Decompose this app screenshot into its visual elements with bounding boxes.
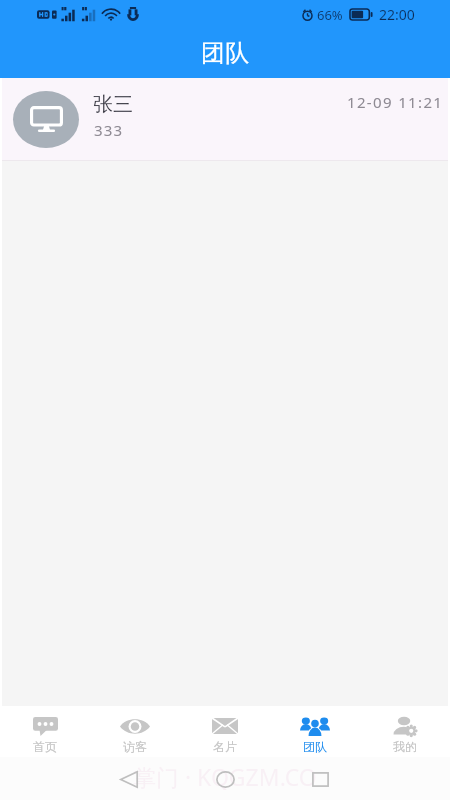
button[interactable]: Home xyxy=(203,764,247,794)
staticText: 张三 xyxy=(93,92,133,117)
staticText: 我的 xyxy=(393,739,417,754)
button[interactable]: 团队 xyxy=(270,706,360,757)
staticText: 团队 xyxy=(303,739,327,754)
staticText: 掌门 · KQGZM.CO xyxy=(133,761,317,792)
staticText: 333 xyxy=(94,120,124,140)
staticText: 首页 xyxy=(33,739,57,754)
button[interactable]: 访客 xyxy=(90,706,180,757)
staticText: 访客 xyxy=(123,739,147,754)
staticText: 团队 xyxy=(201,38,249,68)
button[interactable]: 我的 xyxy=(360,706,450,757)
button[interactable]: 张三 xyxy=(2,78,448,161)
button[interactable]: 首页 xyxy=(0,706,90,757)
button[interactable]: 名片 xyxy=(180,706,270,757)
staticText: 22:00 xyxy=(379,5,415,24)
button[interactable]: Back xyxy=(107,764,151,794)
staticText: 12-09 11:21 xyxy=(347,92,444,112)
button[interactable]: Recents xyxy=(298,764,342,794)
staticText: 名片 xyxy=(213,739,237,754)
staticText: 66% xyxy=(317,6,343,24)
